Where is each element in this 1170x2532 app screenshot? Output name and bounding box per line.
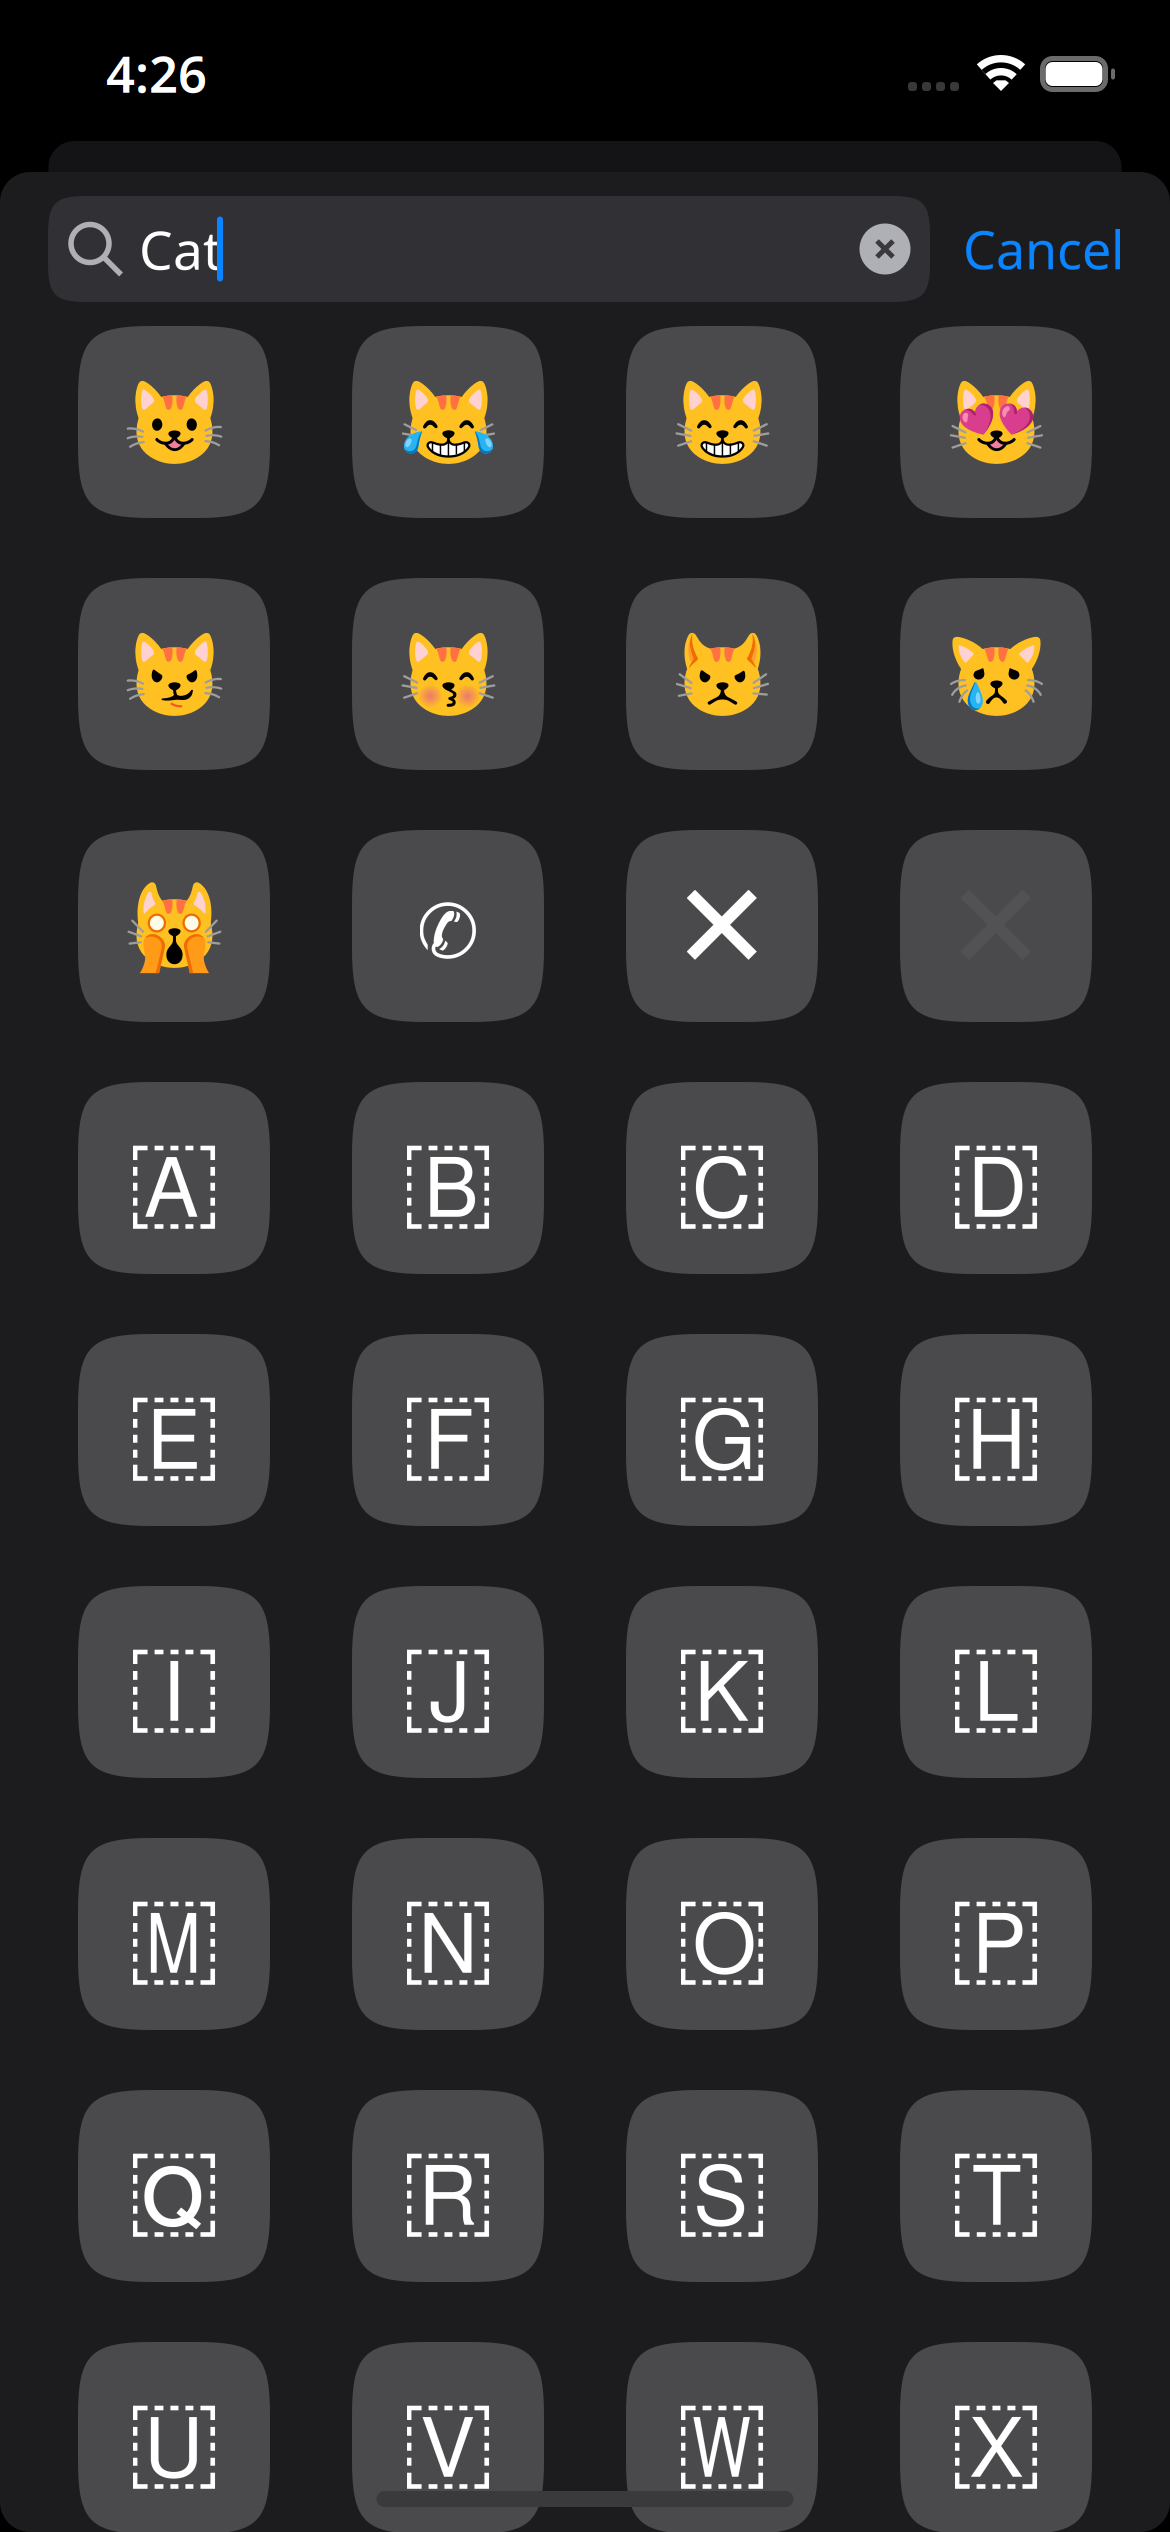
staticText: 🇴 — [673, 1887, 770, 1993]
staticText: 🇵 — [947, 1887, 1044, 1993]
staticText: 😹 — [396, 377, 499, 471]
staticText: Cat — [139, 214, 222, 284]
staticText: 4:26 — [106, 39, 207, 107]
staticText: 🇱 — [947, 1635, 1044, 1741]
staticText: 🇸 — [673, 2139, 770, 2245]
button[interactable]: 🇻 — [352, 2342, 544, 2532]
staticText: 🇭 — [947, 1383, 1044, 1489]
staticText: 🇷 — [399, 2139, 496, 2245]
button[interactable]: 🇮 — [78, 1586, 270, 1778]
button[interactable]: 🇽 — [900, 2342, 1092, 2532]
button[interactable]: 😺 — [78, 326, 270, 518]
button[interactable]: 🇦 — [78, 1082, 270, 1274]
button[interactable]: 🇬 — [626, 1334, 818, 1526]
button[interactable]: 🇱 — [900, 1586, 1092, 1778]
staticText: 😻 — [944, 377, 1047, 471]
button[interactable]: ✕ — [900, 830, 1092, 1022]
button[interactable]: 🇲 — [78, 1838, 270, 2030]
button[interactable]: 🇺 — [78, 2342, 270, 2532]
button[interactable]: Clear search text — [840, 199, 930, 299]
staticText: 🇩 — [947, 1131, 1044, 1237]
staticText: 🇮 — [125, 1635, 222, 1741]
button[interactable]: ✕ — [626, 830, 818, 1022]
button[interactable]: 🇫 — [352, 1334, 544, 1526]
staticText: ✆ — [416, 890, 479, 974]
button[interactable]: 🇩 — [900, 1082, 1092, 1274]
button[interactable]: 🇭 — [900, 1334, 1092, 1526]
button[interactable]: ✆ — [352, 830, 544, 1022]
staticText: 🇶 — [125, 2139, 222, 2245]
button[interactable]: 🙀 — [78, 830, 270, 1022]
button[interactable]: 🇯 — [352, 1586, 544, 1778]
button[interactable]: 😽 — [352, 578, 544, 770]
staticText: 🇺 — [125, 2391, 222, 2497]
button[interactable]: 😸 — [626, 326, 818, 518]
button[interactable]: 🇶 — [78, 2090, 270, 2282]
staticText: 🇨 — [673, 1131, 770, 1237]
staticText: Cancel — [963, 214, 1124, 284]
staticText: 🇻 — [399, 2391, 496, 2497]
button[interactable]: 😾 — [626, 578, 818, 770]
staticText: 😾 — [670, 629, 773, 723]
button[interactable]: 🇸 — [626, 2090, 818, 2282]
button[interactable]: 🇵 — [900, 1838, 1092, 2030]
button[interactable]: 🇳 — [352, 1838, 544, 2030]
staticText: 🇪 — [125, 1383, 222, 1489]
staticText: 🇹 — [947, 2139, 1044, 2245]
button[interactable]: 😹 — [352, 326, 544, 518]
staticText: 🇦 — [125, 1131, 222, 1237]
button[interactable]: 🇰 — [626, 1586, 818, 1778]
button[interactable]: 😻 — [900, 326, 1092, 518]
button[interactable]: 🇴 — [626, 1838, 818, 2030]
staticText: 🇽 — [947, 2391, 1044, 2497]
button[interactable]: 😿 — [900, 578, 1092, 770]
staticText: ✕ — [671, 859, 772, 995]
staticText: 🇲 — [125, 1887, 222, 1993]
staticText: 😼 — [122, 629, 225, 723]
staticText: 🇫 — [399, 1383, 496, 1489]
staticText: 🇯 — [399, 1635, 496, 1741]
button[interactable]: 🇹 — [900, 2090, 1092, 2282]
staticText: 😿 — [944, 629, 1047, 723]
button[interactable]: Cancel — [930, 196, 1154, 302]
staticText: 🇧 — [399, 1131, 496, 1237]
staticText: 😺 — [122, 377, 225, 471]
staticText: 😽 — [396, 629, 499, 723]
button[interactable]: 🇼 — [626, 2342, 818, 2532]
staticText: 🙀 — [122, 881, 225, 975]
staticText: 🇳 — [399, 1887, 496, 1993]
staticText: 🇼 — [673, 2391, 770, 2497]
staticText: 🇰 — [673, 1635, 770, 1741]
button[interactable]: 🇪 — [78, 1334, 270, 1526]
button[interactable]: 🇨 — [626, 1082, 818, 1274]
button[interactable]: 😼 — [78, 578, 270, 770]
staticText: 🇬 — [673, 1383, 770, 1489]
button[interactable]: 🇷 — [352, 2090, 544, 2282]
staticText: 😸 — [670, 377, 773, 471]
button[interactable]: 🇧 — [352, 1082, 544, 1274]
